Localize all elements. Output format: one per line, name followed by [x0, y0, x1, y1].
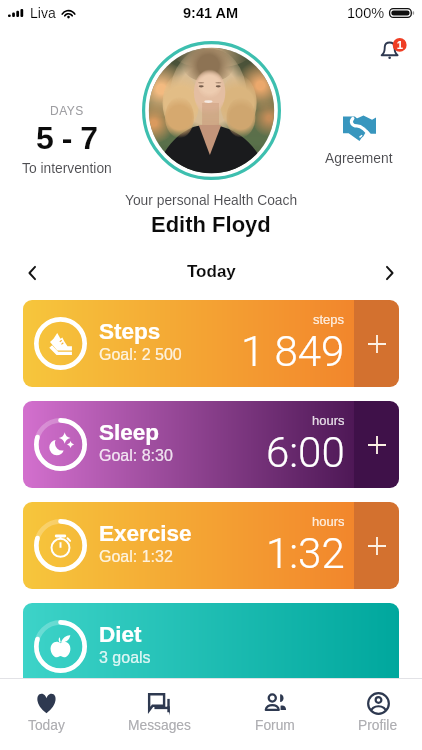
staticText: 5 - 7 [36, 120, 98, 156]
staticText: Sleep [99, 420, 160, 445]
staticText: Your personal Health Coach [125, 193, 298, 208]
staticText: Agreement [325, 151, 393, 166]
button[interactable]: Profile [326, 679, 422, 750]
staticText: Today [28, 718, 65, 733]
staticText: Goal: 2 500 [99, 346, 182, 364]
staticText: Steps [99, 319, 161, 344]
staticText: 3 goals [99, 649, 151, 667]
button[interactable]: Add Sleep [23, 401, 399, 488]
staticText: Messages [128, 718, 191, 733]
button[interactable]: Add Steps [354, 300, 399, 387]
button[interactable]: Previous day [15, 256, 49, 290]
staticText: Goal: 8:30 [99, 447, 173, 465]
staticText: hours [312, 514, 345, 529]
button[interactable]: Next day [373, 256, 407, 290]
button[interactable]: Notifications [374, 33, 408, 67]
staticText: Diet [99, 622, 142, 647]
button[interactable]: Add Exercise [354, 502, 399, 589]
staticText: Forum [255, 718, 295, 733]
staticText: 9:41 AM [183, 5, 239, 21]
staticText: Exercise [99, 521, 192, 546]
staticText: Liva [30, 5, 56, 21]
staticText: Profile [358, 718, 398, 733]
staticText: 100% [347, 5, 385, 21]
button[interactable]: Forum [223, 679, 327, 750]
button[interactable]: Today [0, 679, 98, 750]
staticText: steps [313, 312, 345, 327]
staticText: 1 [397, 39, 403, 51]
button[interactable]: Messages [107, 679, 211, 750]
staticText: Goal: 1:32 [99, 548, 173, 566]
staticText: Today [187, 262, 236, 281]
button[interactable]: Add Steps [23, 300, 399, 387]
staticText: Edith Floyd [151, 212, 271, 237]
staticText: To intervention [22, 161, 112, 176]
button[interactable]: Agreement [299, 115, 419, 166]
staticText: 6:00 [266, 428, 345, 477]
staticText: DAYS [50, 104, 84, 117]
staticText: hours [312, 413, 345, 428]
staticText: 1:32 [266, 529, 345, 578]
staticText: 1 849 [241, 327, 345, 376]
button[interactable]: Add Sleep [354, 401, 399, 488]
button[interactable]: Add Exercise [23, 502, 399, 589]
button[interactable]: Diet [23, 603, 399, 690]
